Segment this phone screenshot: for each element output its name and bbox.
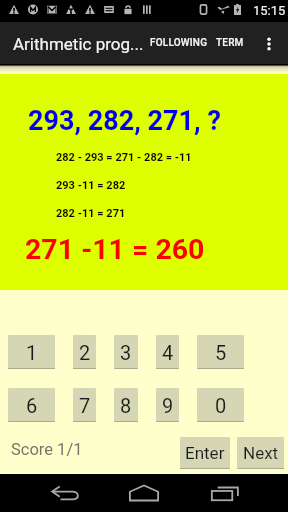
button[interactable]: 8 [114, 388, 138, 422]
staticText: Arithmetic prog... [13, 34, 144, 54]
button[interactable]: 0 [197, 388, 244, 422]
staticText: 0 [215, 394, 227, 417]
button[interactable]: More options [256, 31, 282, 57]
staticText: 293, 282, 271, ? [28, 105, 221, 137]
staticText: Score 1/1 [11, 440, 83, 459]
button[interactable]: Back [44, 481, 86, 505]
staticText: 282 - 293 = 271 - 282 = -11 [56, 151, 192, 164]
staticText: 4 [162, 341, 174, 364]
button[interactable]: 9 [156, 388, 179, 422]
staticText: Enter [185, 443, 225, 463]
button[interactable]: 3 [114, 335, 138, 369]
button[interactable]: 4 [156, 335, 179, 369]
staticText: 6 [26, 394, 38, 417]
button[interactable]: 5 [197, 335, 244, 369]
staticText: 1 [26, 341, 38, 364]
button[interactable]: 6 [8, 388, 55, 422]
staticText: 15:15 [253, 3, 286, 18]
button[interactable]: 1 [8, 335, 55, 369]
staticText: Next [243, 443, 279, 463]
button[interactable]: 2 [73, 335, 96, 369]
staticText: 9 [162, 394, 174, 417]
staticText: 2 [79, 341, 91, 364]
staticText: 293 -11 = 282 [56, 179, 126, 192]
button[interactable]: Next [237, 437, 284, 469]
button[interactable]: FOLLOWING [144, 30, 214, 56]
button[interactable]: Enter [180, 437, 230, 469]
staticText: FOLLOWING [150, 37, 208, 49]
button[interactable]: Recent apps [206, 481, 244, 505]
staticText: 5 [215, 341, 227, 364]
staticText: 3 [120, 341, 132, 364]
staticText: 282 -11 = 271 [56, 207, 126, 220]
staticText: TERM [216, 37, 244, 49]
staticText: 8 [120, 394, 132, 417]
button[interactable]: TERM [210, 30, 250, 56]
button[interactable]: 7 [73, 388, 96, 422]
staticText: 7 [79, 394, 91, 417]
staticText: 271 -11 = 260 [25, 233, 205, 266]
button[interactable]: Home [124, 480, 164, 506]
